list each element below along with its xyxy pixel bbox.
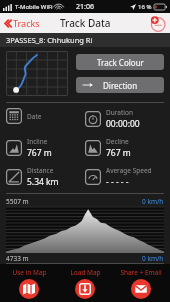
staticText: Track Data bbox=[60, 16, 111, 30]
staticText: Duration bbox=[106, 108, 133, 117]
staticText: 16 % bbox=[138, 3, 152, 11]
button[interactable]: Add track bbox=[149, 15, 166, 32]
staticText: 21:06 bbox=[76, 2, 94, 12]
staticText: 767 m bbox=[27, 147, 52, 159]
staticText: 4733 m bbox=[6, 254, 29, 263]
staticText: Average Speed bbox=[106, 166, 152, 175]
staticText: 5.34 km bbox=[27, 176, 59, 188]
button[interactable]: 3PASSES_8: Chhukung Ri bbox=[0, 33, 170, 47]
staticText: Use in Map bbox=[12, 268, 47, 277]
button[interactable]: Load Map bbox=[58, 266, 112, 301]
staticText: Tracks bbox=[13, 17, 40, 29]
button[interactable]: Decline bbox=[85, 137, 164, 159]
button[interactable]: Track map preview bbox=[6, 51, 68, 96]
staticText: Share + Email bbox=[120, 268, 162, 277]
button[interactable]: Incline bbox=[6, 137, 85, 159]
button[interactable]: Date bbox=[6, 108, 85, 124]
staticText: Track Colour bbox=[97, 57, 144, 68]
staticText: Decline bbox=[106, 137, 129, 146]
staticText: 3PASSES_8: Chhukung Ri bbox=[6, 35, 93, 45]
button[interactable]: Average Speed bbox=[85, 166, 164, 188]
staticText: Direction bbox=[103, 80, 138, 91]
staticText: Incline bbox=[27, 137, 48, 146]
staticText: 00:00:00 bbox=[106, 118, 140, 130]
button[interactable]: Use in Map bbox=[2, 266, 56, 301]
button[interactable]: Share + Email bbox=[114, 266, 168, 301]
button[interactable]: Track Colour bbox=[76, 54, 164, 70]
button[interactable]: Duration bbox=[85, 108, 164, 130]
staticText: Load Map bbox=[70, 268, 101, 277]
staticText: T-Mobile WiFi bbox=[15, 3, 53, 11]
staticText: 5507 m bbox=[6, 197, 29, 206]
button[interactable]: Tracks bbox=[0, 15, 44, 31]
staticText: 0 km/h bbox=[142, 197, 164, 206]
button[interactable]: Elevation profile chart bbox=[6, 207, 164, 253]
staticText: 0 km/h bbox=[142, 254, 164, 263]
staticText: 767 m bbox=[106, 147, 131, 159]
staticText: - - - - - bbox=[106, 176, 129, 188]
staticText: Date bbox=[27, 112, 42, 121]
button[interactable]: Distance bbox=[6, 166, 85, 188]
staticText: Distance bbox=[27, 166, 54, 175]
button[interactable]: Direction bbox=[76, 77, 164, 93]
